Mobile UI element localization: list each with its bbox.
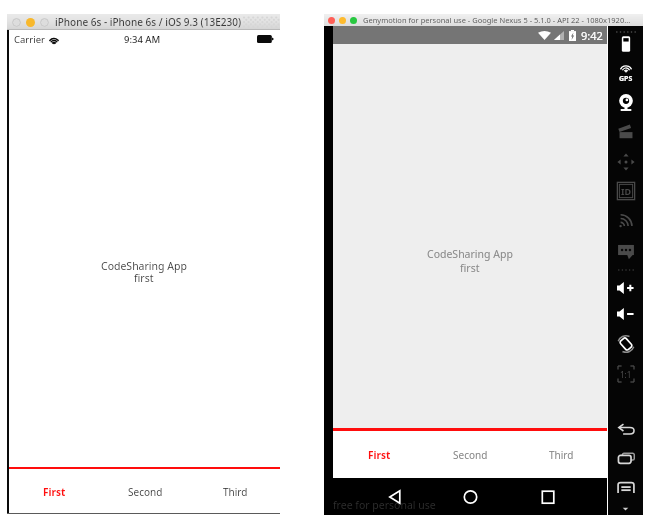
button[interactable]: Video recording — [614, 121, 638, 145]
button[interactable]: Rotate screen — [614, 332, 638, 356]
staticText: free for personal use — [333, 498, 436, 512]
button[interactable]: Identifiers — [614, 179, 638, 203]
staticText: Second — [128, 485, 163, 499]
button[interactable]: Recents — [614, 447, 638, 471]
staticText: 1:1 — [620, 369, 632, 380]
staticText: ID — [621, 185, 632, 197]
staticText: Third — [549, 448, 574, 462]
button[interactable]: Second — [425, 431, 516, 478]
staticText: First — [43, 485, 66, 499]
button[interactable]: Third — [516, 431, 607, 478]
staticText: First — [368, 448, 391, 462]
button[interactable]: Home — [456, 482, 485, 511]
button[interactable]: Volume up — [614, 276, 638, 300]
button[interactable]: Minimize — [339, 17, 346, 24]
button[interactable]: First — [9, 469, 100, 514]
button[interactable]: Recent apps — [533, 482, 562, 511]
button[interactable]: Second — [100, 469, 190, 514]
button[interactable]: Battery — [614, 32, 638, 56]
staticText: Genymotion for personal use - Google Nex… — [363, 15, 631, 25]
staticText: CodeSharing App — [101, 259, 187, 273]
button[interactable]: GPS — [614, 56, 638, 80]
button[interactable]: Zoom to 1:1 — [614, 362, 638, 386]
staticText: Second — [453, 448, 488, 462]
staticText: Third — [223, 485, 248, 499]
button[interactable]: Messages — [614, 238, 638, 262]
button[interactable]: Zoom — [350, 17, 357, 24]
button[interactable]: Navigation pad — [614, 150, 638, 174]
button[interactable]: Back — [381, 482, 410, 511]
button[interactable]: Menu — [614, 476, 638, 500]
button[interactable]: Camera — [614, 91, 638, 115]
button[interactable]: First — [333, 431, 425, 478]
staticText: 9:34 AM — [124, 33, 161, 46]
button[interactable]: Volume down — [614, 302, 638, 326]
button[interactable]: Window button — [40, 18, 49, 27]
button[interactable]: Network — [614, 208, 638, 232]
button[interactable]: Window button — [12, 18, 21, 27]
staticText: GPS — [619, 74, 633, 84]
staticText: Carrier — [14, 33, 45, 46]
staticText: first — [134, 271, 154, 285]
staticText: 9:42 — [581, 28, 603, 43]
button[interactable]: Close — [328, 17, 335, 24]
button[interactable]: Back — [614, 417, 638, 441]
staticText: CodeSharing App — [427, 247, 513, 261]
staticText: first — [460, 261, 480, 275]
button[interactable]: Minimize — [26, 18, 35, 27]
button[interactable]: Third — [190, 469, 280, 514]
staticText: iPhone 6s - iPhone 6s / iOS 9.3 (13E230) — [55, 15, 242, 29]
